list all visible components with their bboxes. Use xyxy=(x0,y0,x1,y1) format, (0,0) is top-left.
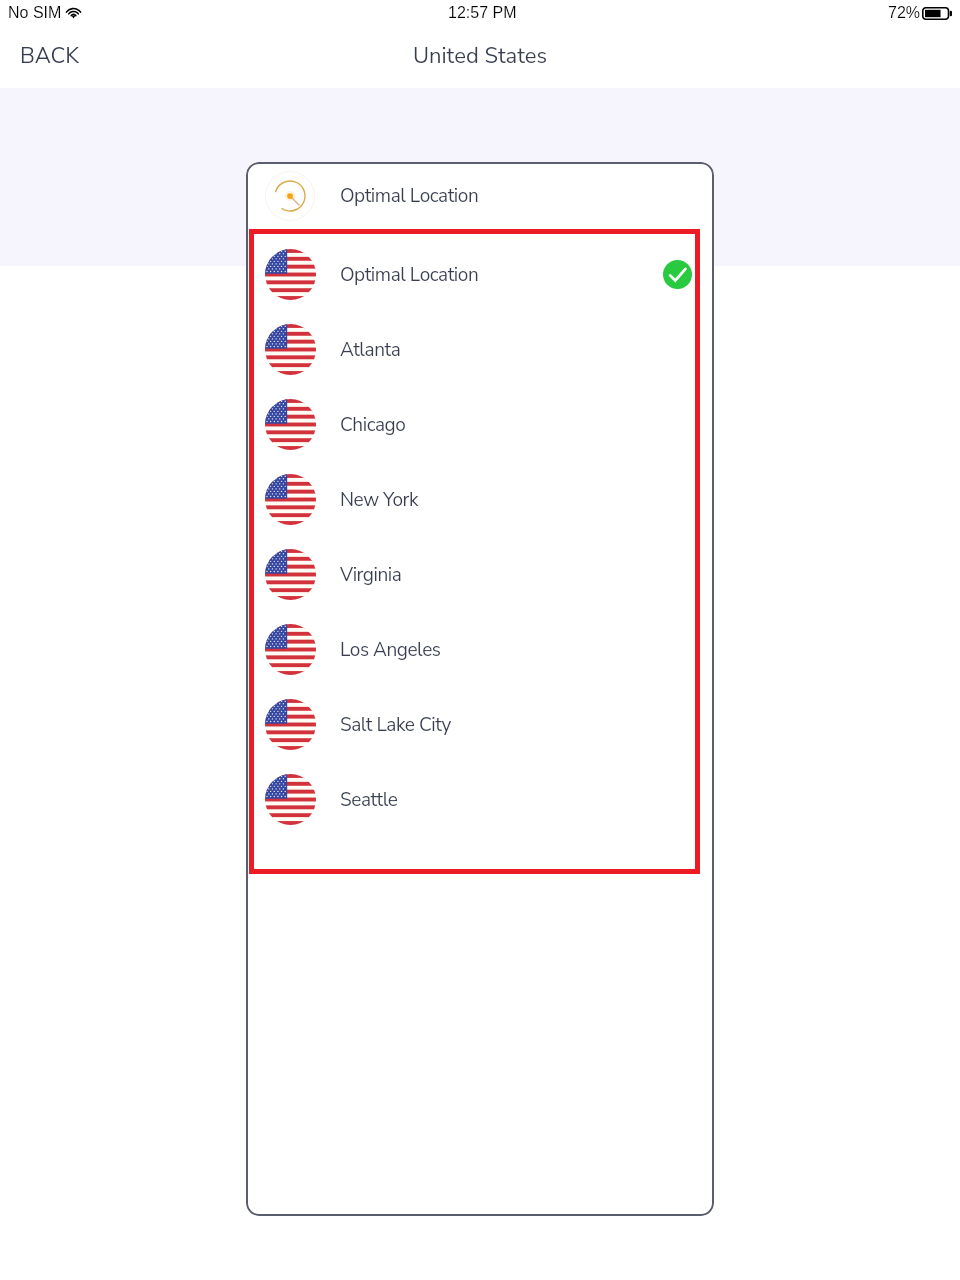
button[interactable]: BACK xyxy=(6,33,94,79)
staticText: Optimal Location xyxy=(340,262,479,288)
button[interactable]: New York xyxy=(246,462,714,537)
staticText: Virginia xyxy=(340,562,402,588)
other: Selected xyxy=(663,260,692,289)
staticText: 72% xyxy=(888,4,921,22)
button[interactable]: Seattle xyxy=(246,762,714,837)
staticText: New York xyxy=(340,487,419,513)
staticText: Los Angeles xyxy=(340,637,441,663)
staticText: Salt Lake City xyxy=(340,712,451,738)
button[interactable]: Virginia xyxy=(246,537,714,612)
button[interactable]: Chicago xyxy=(246,387,714,462)
button[interactable]: Atlanta xyxy=(246,312,714,387)
button[interactable]: Los Angeles xyxy=(246,612,714,687)
staticText: No SIM xyxy=(8,4,62,22)
staticText: United States xyxy=(413,41,548,71)
staticText: Chicago xyxy=(340,412,406,438)
staticText: BACK xyxy=(20,41,80,71)
staticText: 12:57 PM xyxy=(448,4,517,22)
button[interactable]: Salt Lake City xyxy=(246,687,714,762)
button[interactable]: Optimal Location xyxy=(246,237,714,312)
staticText: Atlanta xyxy=(340,337,401,363)
button[interactable]: Optimal Location xyxy=(246,162,714,229)
staticText: Seattle xyxy=(340,787,398,813)
staticText: Optimal Location xyxy=(340,183,479,209)
